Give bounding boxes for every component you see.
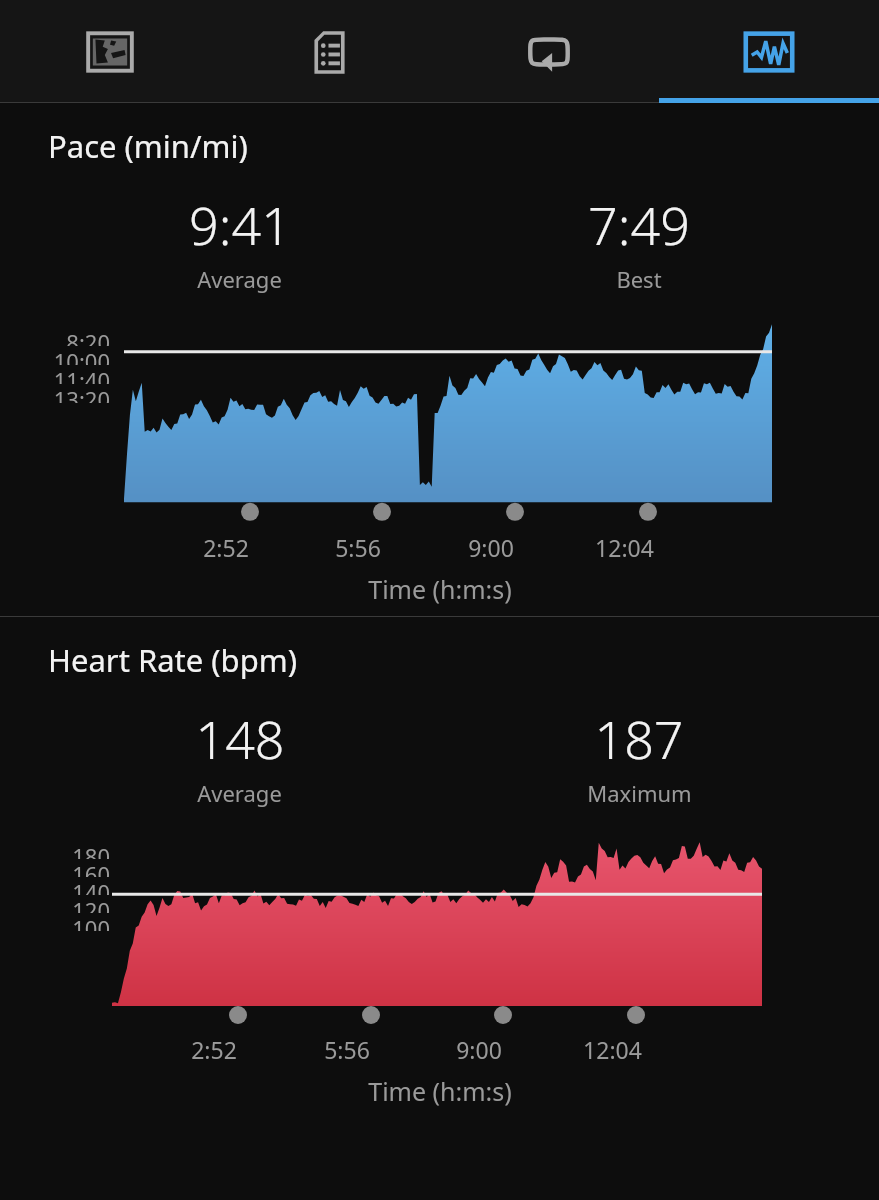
staticText: 12:04: [583, 1034, 642, 1065]
button[interactable]: Graphs: [659, 0, 879, 103]
staticText: 120: [72, 895, 110, 913]
staticText: Maximum: [587, 778, 692, 808]
staticText: 2:52: [191, 1034, 237, 1065]
staticText: 10:00: [53, 346, 110, 365]
staticText: 13:20: [53, 384, 110, 403]
staticText: 12:04: [595, 532, 654, 563]
staticText: Average: [197, 264, 282, 294]
staticText: 140: [72, 877, 110, 895]
button[interactable]: Map: [0, 0, 219, 103]
staticText: 5:56: [335, 532, 381, 563]
staticText: Best: [616, 264, 662, 294]
button[interactable]: Laps: [439, 0, 659, 103]
staticText: 2:52: [203, 532, 249, 563]
staticText: 7:49: [588, 189, 690, 260]
staticText: 9:41: [189, 189, 291, 260]
staticText: 9:00: [468, 532, 514, 563]
staticText: Average: [197, 778, 282, 808]
staticText: 11:40: [53, 365, 110, 384]
staticText: 5:56: [324, 1034, 370, 1065]
staticText: 100: [72, 913, 110, 931]
staticText: Heart Rate (bpm): [48, 639, 298, 681]
staticText: 180: [72, 841, 110, 859]
staticText: Pace (min/mi): [48, 125, 248, 167]
staticText: 148: [195, 703, 285, 774]
staticText: 8:20: [66, 327, 110, 346]
staticText: 9:00: [456, 1034, 502, 1065]
staticText: 187: [594, 703, 684, 774]
staticText: Time (h:m:s): [368, 1074, 512, 1108]
staticText: Time (h:m:s): [368, 572, 512, 606]
button[interactable]: Summary: [219, 0, 439, 103]
staticText: 160: [72, 859, 110, 877]
